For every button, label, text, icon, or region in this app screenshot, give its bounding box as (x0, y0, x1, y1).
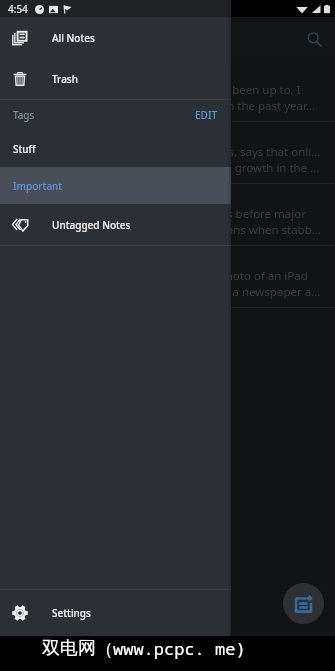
staticText: All Notes (52, 31, 95, 45)
button[interactable]: Online shopping (0, 122, 335, 184)
staticText: Crime report (14, 189, 88, 205)
staticText: Untagged Notes (52, 218, 131, 232)
button[interactable]: Catching up (0, 60, 335, 122)
staticText: EDIT (195, 108, 218, 122)
button[interactable]: Arrest made (0, 246, 335, 308)
button[interactable]: New note (283, 583, 324, 624)
button[interactable]: All Notes (0, 17, 231, 58)
staticText: shopping holidays and took all precautio… (14, 222, 321, 238)
staticText: （www.pcpc. me) (96, 637, 246, 660)
staticText: Catching up (14, 65, 83, 81)
staticText: Tags (13, 108, 35, 122)
button[interactable]: Search (298, 23, 330, 55)
staticText: He said the victim had been in the shops… (14, 206, 306, 222)
staticText: shopping in this country has seen a six … (14, 160, 320, 176)
staticText: 4:54 (8, 2, 28, 16)
button[interactable]: Crime report (0, 184, 335, 246)
button[interactable]: Untagged Notes (0, 204, 231, 245)
staticText: 双电网 (42, 637, 96, 660)
staticText: which had been found under a bench at a … (14, 284, 321, 300)
button[interactable]: Trash (0, 58, 231, 99)
button[interactable]: Settings (0, 590, 231, 636)
staticText: A new report, released by the companies,… (14, 144, 322, 160)
staticText: Settings (52, 606, 91, 620)
staticText: The man was arrested after he took a pho… (14, 268, 308, 284)
staticText: have been following all of his progress … (14, 98, 316, 114)
staticText: Stuff (13, 142, 36, 156)
staticText: Trash (52, 72, 78, 86)
staticText: Important (13, 179, 63, 193)
button[interactable]: EDIT (182, 102, 231, 128)
staticText: Here is a quick summary of what he has b… (14, 82, 301, 98)
button[interactable]: Stuff (0, 130, 231, 167)
button[interactable]: Important (0, 167, 231, 204)
